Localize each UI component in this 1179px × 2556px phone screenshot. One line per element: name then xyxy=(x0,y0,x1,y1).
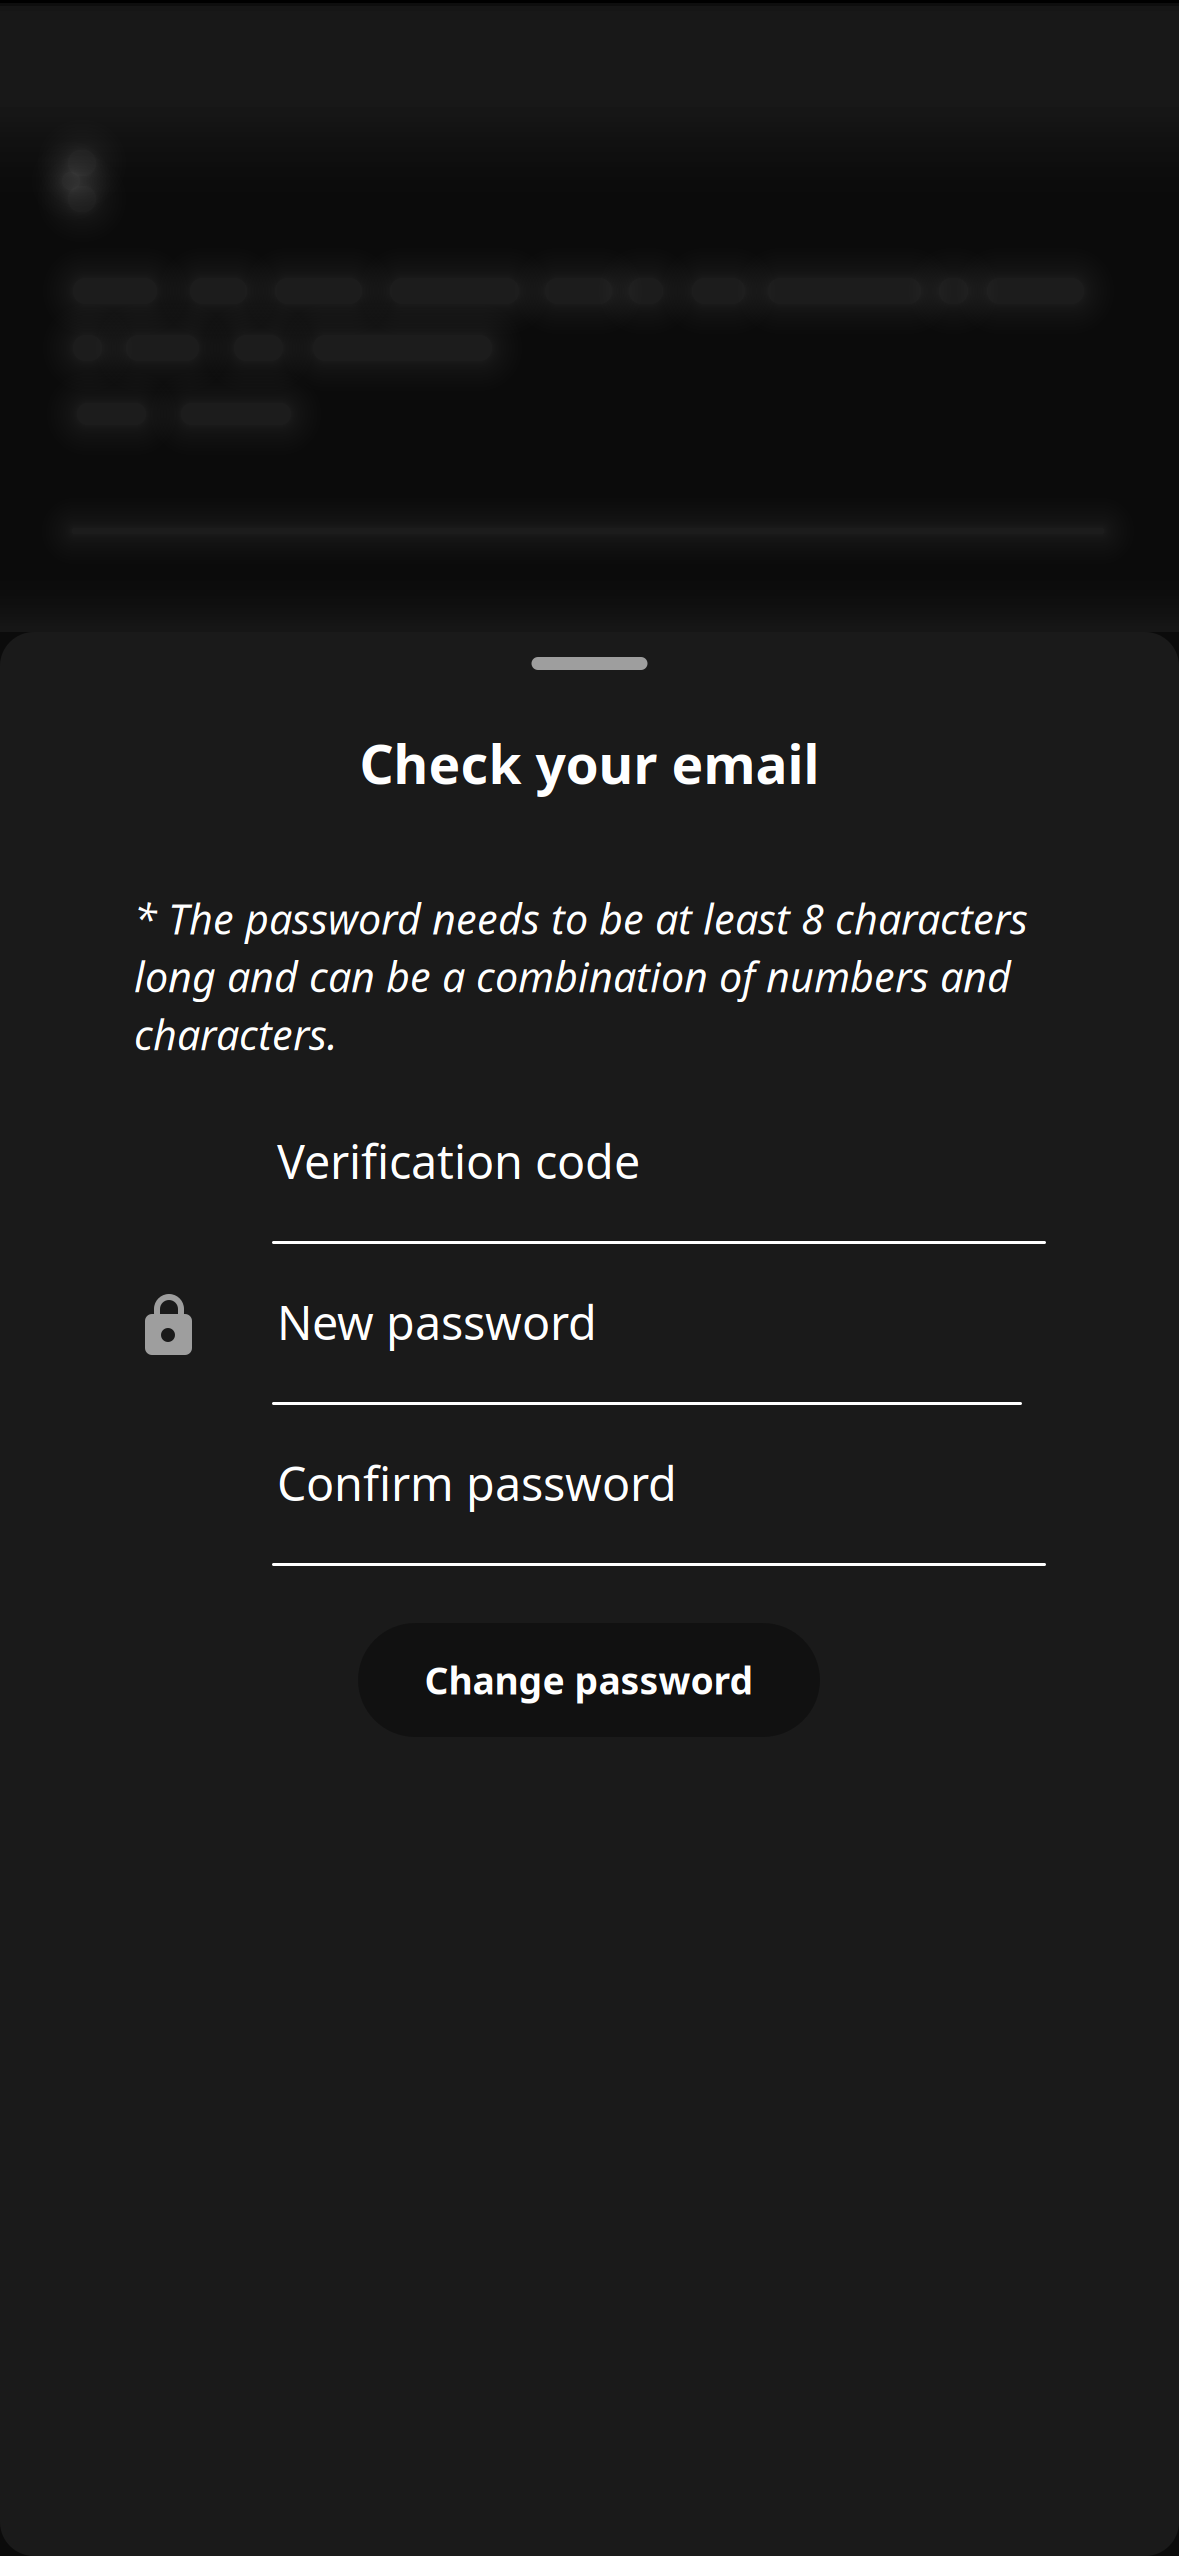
staticText: Check your email xyxy=(359,728,819,799)
button[interactable]: Confirm password xyxy=(272,1452,1046,1613)
staticText: Verification code xyxy=(277,1130,640,1192)
staticText: New password xyxy=(277,1291,597,1353)
button[interactable]: Change password xyxy=(358,1623,820,1737)
button[interactable]: Verification code xyxy=(272,1130,1046,1291)
staticText: * The password needs to be at least 8 ch… xyxy=(134,891,1028,1062)
button[interactable]: New password xyxy=(272,1291,1046,1452)
staticText: Confirm password xyxy=(277,1452,677,1514)
staticText: Change password xyxy=(424,1655,753,1705)
